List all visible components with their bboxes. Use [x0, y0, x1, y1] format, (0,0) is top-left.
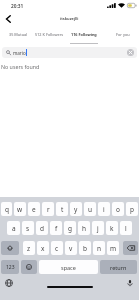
staticText: i: [103, 205, 105, 214]
staticText: v: [69, 244, 73, 253]
button[interactable]: q: [1, 202, 12, 216]
staticText: b: [83, 244, 87, 253]
button[interactable]: 35 Mutual: [4, 29, 32, 42]
staticText: d: [40, 224, 44, 233]
button[interactable]: d: [36, 221, 48, 235]
button[interactable]: l: [120, 221, 132, 235]
button[interactable]: p: [126, 202, 138, 216]
button[interactable]: space: [39, 260, 98, 274]
button[interactable]: v: [65, 241, 77, 255]
staticText: g: [68, 224, 72, 233]
button[interactable]: a: [7, 221, 20, 235]
button[interactable]: o: [112, 202, 124, 216]
button[interactable]: b: [79, 241, 91, 255]
button[interactable]: x: [37, 241, 49, 255]
staticText: For you: [116, 32, 130, 37]
staticText: h: [82, 224, 87, 233]
button[interactable]: m: [107, 241, 119, 255]
staticText: f: [55, 224, 58, 233]
button[interactable]: Shift: [1, 241, 19, 255]
staticText: a: [12, 224, 16, 233]
staticText: j: [97, 224, 99, 233]
staticText: 123: [6, 264, 15, 271]
button[interactable]: i: [98, 202, 110, 216]
staticText: y: [74, 205, 78, 214]
staticText: o: [116, 205, 120, 214]
staticText: space: [61, 264, 76, 271]
button[interactable]: u: [84, 202, 96, 216]
staticText: r: [47, 205, 50, 214]
button[interactable]: Dictate: [126, 279, 134, 287]
staticText: t: [61, 205, 64, 214]
staticText: k: [110, 224, 114, 233]
button[interactable]: e: [28, 202, 40, 216]
staticText: n: [97, 244, 102, 253]
staticText: p: [130, 205, 134, 214]
staticText: No users found: [1, 63, 40, 70]
button[interactable]: z: [23, 241, 35, 255]
staticText: return: [110, 264, 127, 271]
button[interactable]: mario: [2, 47, 137, 58]
button[interactable]: k: [106, 221, 118, 235]
button[interactable]: r: [42, 202, 54, 216]
button[interactable]: y: [70, 202, 82, 216]
button[interactable]: Backspace: [123, 241, 138, 255]
staticText: m: [110, 244, 117, 253]
button[interactable]: s: [22, 221, 34, 235]
staticText: x: [41, 244, 45, 253]
staticText: s: [26, 224, 30, 233]
staticText: 35 Mutual: [9, 32, 28, 37]
button[interactable]: c: [51, 241, 63, 255]
button[interactable]: g: [64, 221, 76, 235]
button[interactable]: h: [78, 221, 90, 235]
staticText: 116 Following: [71, 32, 97, 37]
button[interactable]: Clear text: [127, 49, 134, 56]
button[interactable]: return: [100, 260, 137, 274]
button[interactable]: For you: [110, 29, 135, 42]
staticText: 512 K Followers: [35, 32, 64, 37]
staticText: mario: [13, 50, 26, 56]
staticText: q: [5, 205, 9, 214]
staticText: u: [88, 205, 93, 214]
button[interactable]: n: [93, 241, 105, 255]
button[interactable]: w: [14, 202, 26, 216]
staticText: itskuzejlli: [60, 16, 79, 21]
button[interactable]: f: [50, 221, 62, 235]
button[interactable]: Change keyboard: [5, 279, 13, 287]
staticText: c: [55, 244, 59, 253]
staticText: l: [125, 224, 127, 233]
button[interactable]: 116 Following: [70, 29, 98, 42]
button[interactable]: 512 K Followers: [33, 29, 65, 42]
staticText: w: [17, 205, 23, 214]
button[interactable]: Emoji: [21, 260, 37, 274]
button[interactable]: 123: [1, 260, 19, 274]
button[interactable]: j: [92, 221, 104, 235]
button[interactable]: Back: [0, 12, 16, 25]
staticText: 20:31: [11, 3, 24, 10]
staticText: e: [32, 205, 36, 214]
staticText: z: [27, 244, 31, 253]
button[interactable]: t: [56, 202, 68, 216]
